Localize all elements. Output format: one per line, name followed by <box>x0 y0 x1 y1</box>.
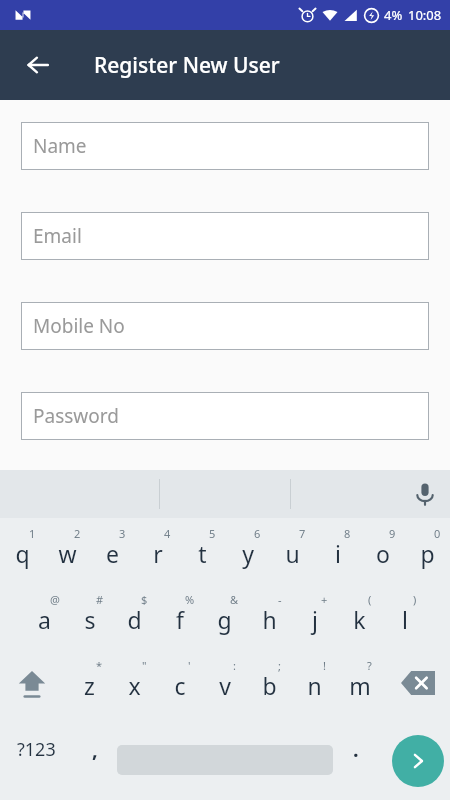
staticText: $ <box>141 592 148 607</box>
staticText: y <box>242 538 254 569</box>
staticText: o <box>376 538 390 569</box>
button[interactable]: & <box>202 584 247 650</box>
button[interactable]: # <box>67 584 112 650</box>
staticText: u <box>285 538 300 569</box>
staticText: Email <box>33 223 82 249</box>
staticText: v <box>219 670 231 701</box>
staticText: ?123 <box>17 737 56 762</box>
staticText: : <box>233 658 236 673</box>
button[interactable]: ?123 <box>0 716 72 782</box>
staticText: x <box>128 670 141 701</box>
button[interactable]: 2 <box>45 518 90 584</box>
staticText: , <box>92 736 98 763</box>
button[interactable]: 7 <box>270 518 315 584</box>
button[interactable]: 0 <box>405 518 450 584</box>
button[interactable]: 5 <box>180 518 225 584</box>
staticText: Password <box>33 403 119 429</box>
staticText: l <box>402 604 408 635</box>
staticText: 7 <box>299 526 306 541</box>
staticText: q <box>15 538 30 569</box>
staticText: m <box>349 670 371 701</box>
staticText: 2 <box>74 526 81 541</box>
staticText: 3 <box>119 526 126 541</box>
button[interactable]: . <box>333 716 378 782</box>
staticText: Register New User <box>94 51 280 80</box>
button[interactable]: - <box>247 584 292 650</box>
staticText: r <box>153 538 163 569</box>
staticText: 8 <box>344 526 351 541</box>
staticText: c <box>174 670 186 701</box>
staticText: & <box>230 592 239 607</box>
button[interactable]: Shift <box>0 650 64 716</box>
button[interactable]: Name <box>21 122 429 170</box>
button[interactable]: Email <box>21 212 429 260</box>
button[interactable]: 9 <box>360 518 405 584</box>
staticText: . <box>353 736 359 763</box>
staticText: 5 <box>209 526 216 541</box>
staticText: + <box>321 592 328 607</box>
staticText: @ <box>50 592 60 607</box>
staticText: ? <box>367 658 372 673</box>
staticText: d <box>127 604 142 635</box>
staticText: e <box>106 538 119 569</box>
button[interactable]: Back <box>14 41 62 89</box>
button[interactable]: % <box>157 584 202 650</box>
staticText: % <box>185 592 195 607</box>
staticText: # <box>96 592 104 607</box>
staticText: 4 <box>164 526 171 541</box>
button[interactable]: ) <box>382 584 427 650</box>
button[interactable]: 3 <box>90 518 135 584</box>
staticText: z <box>84 670 95 701</box>
staticText: ) <box>413 592 417 607</box>
staticText: p <box>420 538 435 569</box>
button[interactable]: " <box>112 650 157 716</box>
staticText: Mobile No <box>33 313 125 339</box>
staticText: ' <box>188 658 191 673</box>
button[interactable]: Mobile No <box>21 302 429 350</box>
button[interactable]: 1 <box>0 518 45 584</box>
staticText: ; <box>278 658 281 673</box>
staticText: ( <box>368 592 372 607</box>
staticText: s <box>84 604 96 635</box>
button[interactable]: ' <box>157 650 202 716</box>
button[interactable]: 4 <box>135 518 180 584</box>
staticText: 0 <box>434 526 441 541</box>
staticText: * <box>96 658 103 673</box>
staticText: j <box>312 604 318 635</box>
staticText: 1 <box>29 526 36 541</box>
staticText: w <box>58 538 77 569</box>
button[interactable]: 6 <box>225 518 270 584</box>
staticText: t <box>198 538 207 569</box>
staticText: n <box>307 670 322 701</box>
button[interactable]: : <box>202 650 247 716</box>
button[interactable]: Backspace <box>386 650 450 716</box>
button[interactable]: ? <box>337 650 382 716</box>
button[interactable]: , <box>72 716 117 782</box>
staticText: h <box>262 604 277 635</box>
staticText: 10:08 <box>408 6 442 24</box>
button[interactable]: Enter <box>392 735 444 787</box>
button[interactable]: ( <box>337 584 382 650</box>
staticText: - <box>278 592 282 607</box>
button[interactable]: + <box>292 584 337 650</box>
staticText: " <box>142 658 147 673</box>
staticText: b <box>262 670 277 701</box>
button[interactable]: @ <box>22 584 67 650</box>
button[interactable]: 8 <box>315 518 360 584</box>
staticText: k <box>353 604 366 635</box>
button[interactable]: Password <box>21 392 429 440</box>
staticText: Name <box>33 133 87 159</box>
staticText: ! <box>323 658 326 673</box>
button[interactable]: ! <box>292 650 337 716</box>
staticText: g <box>217 604 232 635</box>
staticText: f <box>176 604 184 635</box>
staticText: 6 <box>254 526 261 541</box>
button[interactable]: $ <box>112 584 157 650</box>
staticText: 4% <box>384 6 403 24</box>
staticText: i <box>335 538 341 569</box>
button[interactable]: * <box>67 650 112 716</box>
button[interactable]: ; <box>247 650 292 716</box>
staticText: a <box>38 604 51 635</box>
button[interactable]: Voice input <box>403 472 447 516</box>
